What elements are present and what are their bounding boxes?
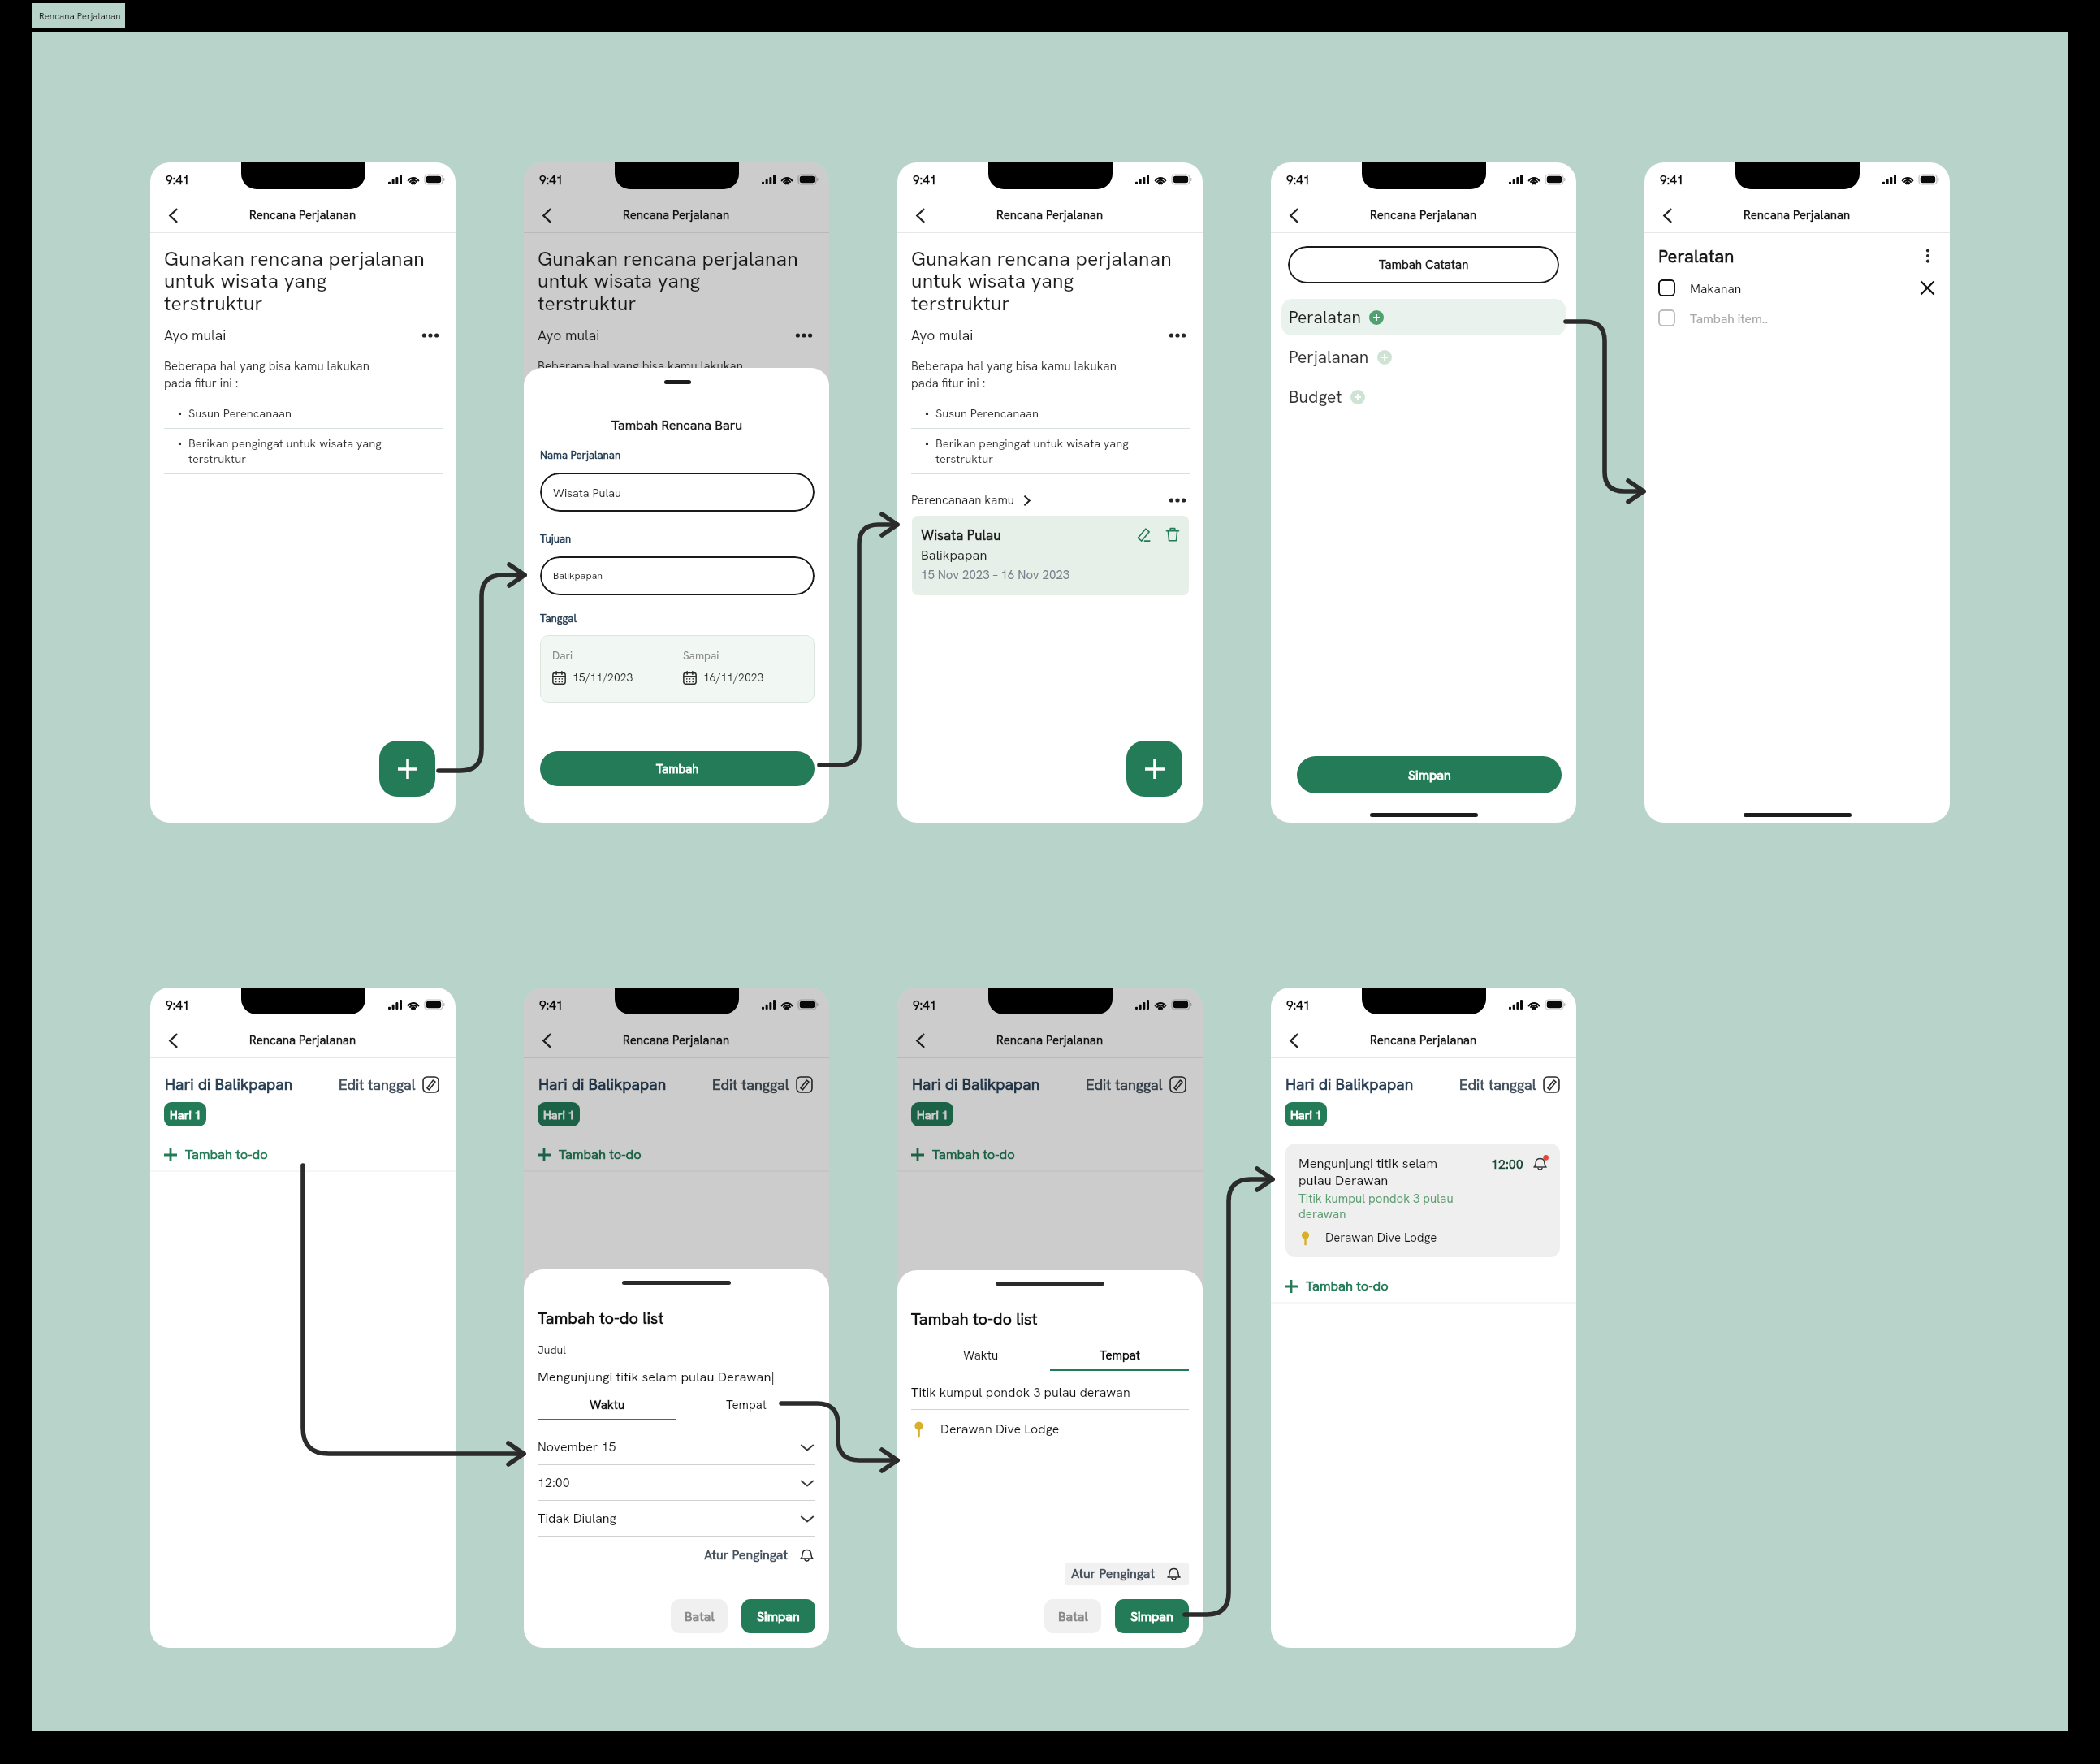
button[interactable]: Waktu xyxy=(538,1397,676,1413)
staticText: Edit tanggal xyxy=(1459,1075,1536,1094)
staticText: Perencanaan kamu xyxy=(911,492,1015,508)
button[interactable]: Perjalanan xyxy=(1281,339,1566,375)
staticText: Gunakan rencana perjalanan untuk wisata … xyxy=(538,245,802,317)
staticText: Nama Perjalanan xyxy=(540,448,621,462)
staticText: Tambah to-do list xyxy=(911,1308,1038,1329)
staticText: 9:41 xyxy=(913,997,937,1014)
button[interactable]: Tempat xyxy=(676,1397,815,1413)
button[interactable]: Simpan xyxy=(1115,1599,1189,1633)
button[interactable]: Back xyxy=(1281,1028,1306,1053)
button[interactable]: Back xyxy=(908,203,932,227)
button[interactable]: Hari 1 xyxy=(538,1102,580,1126)
button[interactable]: More options xyxy=(418,328,443,343)
staticText: Dari xyxy=(552,648,573,663)
button[interactable]: Edit tanggal xyxy=(1459,1075,1560,1094)
staticText: Tempat xyxy=(726,1397,767,1413)
button[interactable]: Hari 1 xyxy=(164,1102,206,1126)
button[interactable]: Wisata Pulau xyxy=(912,516,1189,595)
staticText: 9:41 xyxy=(166,172,190,188)
button[interactable]: Edit tanggal xyxy=(339,1075,439,1094)
button[interactable]: More options xyxy=(792,328,816,343)
button[interactable]: Tambah to-do xyxy=(1271,1267,1576,1302)
staticText: Tambah to-do xyxy=(932,1146,1015,1163)
button[interactable]: Remove xyxy=(1920,280,1935,296)
button[interactable]: Simpan xyxy=(741,1599,815,1633)
button[interactable]: Tambah to-do xyxy=(524,1135,829,1170)
staticText: Tujuan xyxy=(540,532,572,546)
button[interactable]: Add xyxy=(379,741,435,797)
button[interactable]: More options xyxy=(1165,328,1190,343)
button[interactable]: Tambah item.. xyxy=(1658,307,1935,329)
staticText: Tambah Rencana Baru xyxy=(611,417,743,434)
button[interactable]: Back xyxy=(1655,203,1679,227)
button[interactable]: Tambah Catatan xyxy=(1288,246,1559,283)
button[interactable]: Tambah to-do xyxy=(150,1135,456,1170)
staticText: Beberapa hal yang bisa kamu lakukan pada… xyxy=(538,358,767,391)
button[interactable]: Perencanaan kamu xyxy=(911,492,1190,508)
button[interactable]: Hari 1 xyxy=(1285,1102,1327,1126)
button[interactable]: Delete xyxy=(1165,527,1180,542)
button[interactable]: Hari 1 xyxy=(911,1102,953,1126)
button[interactable]: Wisata Pulau xyxy=(540,473,815,512)
staticText: Hari di Balikpapan xyxy=(1285,1074,1414,1095)
button[interactable]: Add xyxy=(1126,741,1182,797)
staticText: 12:00 xyxy=(1491,1156,1523,1173)
staticText: Judul xyxy=(538,1342,566,1357)
staticText: Tambah to-do xyxy=(185,1146,268,1163)
staticText: 9:41 xyxy=(539,172,564,188)
button[interactable]: Mengunjungi titik selam pulau Derawan xyxy=(1285,1144,1560,1257)
button[interactable]: Dari xyxy=(540,635,815,703)
button[interactable]: Atur Pengingat xyxy=(1065,1563,1189,1585)
button[interactable]: November 15 xyxy=(538,1429,815,1464)
button[interactable]: 12:00 xyxy=(538,1465,815,1500)
staticText: Batal xyxy=(1058,1608,1088,1625)
staticText: Simpan xyxy=(1130,1608,1173,1625)
staticText: Gunakan rencana perjalanan untuk wisata … xyxy=(911,245,1176,317)
staticText: Susun Perencanaan xyxy=(188,405,422,421)
button[interactable]: Batal xyxy=(1044,1599,1101,1633)
staticText: Rencana Perjalanan xyxy=(996,207,1104,223)
button[interactable]: Back xyxy=(161,203,185,227)
button[interactable]: Tambah to-do xyxy=(897,1135,1203,1170)
button[interactable]: Peralatan xyxy=(1281,299,1566,335)
button[interactable]: More options xyxy=(1165,493,1190,508)
staticText: Batal xyxy=(685,1608,715,1625)
staticText: Wisata Pulau xyxy=(921,526,1001,544)
button[interactable]: Balikpapan xyxy=(540,556,815,595)
button[interactable]: Budget xyxy=(1281,378,1566,415)
button[interactable]: Tambah xyxy=(540,751,815,786)
staticText: 9:41 xyxy=(539,997,564,1014)
button[interactable]: Back xyxy=(1281,203,1306,227)
button[interactable]: Simpan xyxy=(1297,756,1562,793)
button[interactable]: Atur Pengingat xyxy=(704,1546,815,1563)
staticText: Waktu xyxy=(590,1397,625,1413)
staticText: Simpan xyxy=(757,1608,800,1625)
staticText: • xyxy=(178,435,182,450)
button[interactable]: Edit xyxy=(1137,527,1152,542)
staticText: Titik kumpul pondok 3 pulau derawan xyxy=(911,1384,1130,1401)
button[interactable]: Edit tanggal xyxy=(1086,1075,1186,1094)
staticText: Ayo mulai xyxy=(164,326,227,344)
button[interactable]: Back xyxy=(534,203,559,227)
button[interactable]: Edit tanggal xyxy=(712,1075,813,1094)
staticText: November 15 xyxy=(538,1438,616,1455)
staticText: Rencana Perjalanan xyxy=(623,1032,730,1048)
staticText: Balikpapan xyxy=(921,547,987,564)
staticText: • xyxy=(925,435,929,450)
button[interactable]: More options xyxy=(1921,244,1935,268)
staticText: Rencana Perjalanan xyxy=(249,207,356,223)
button[interactable]: Back xyxy=(534,1028,559,1053)
staticText: 15 Nov 2023 – 16 Nov 2023 xyxy=(921,567,1070,583)
staticText: Tidak Diulang xyxy=(538,1510,616,1527)
staticText: Hari 1 xyxy=(170,1107,201,1122)
button[interactable]: Makanan xyxy=(1658,277,1935,299)
button[interactable]: Waktu xyxy=(911,1347,1050,1364)
button[interactable]: Batal xyxy=(671,1599,728,1633)
button[interactable]: Tidak Diulang xyxy=(538,1501,815,1536)
button[interactable]: Tempat xyxy=(1050,1347,1189,1364)
button[interactable]: Rencana Perjalanan xyxy=(32,3,125,28)
button[interactable]: Back xyxy=(161,1028,185,1053)
button[interactable]: Back xyxy=(908,1028,932,1053)
staticText: Edit tanggal xyxy=(1086,1075,1163,1094)
